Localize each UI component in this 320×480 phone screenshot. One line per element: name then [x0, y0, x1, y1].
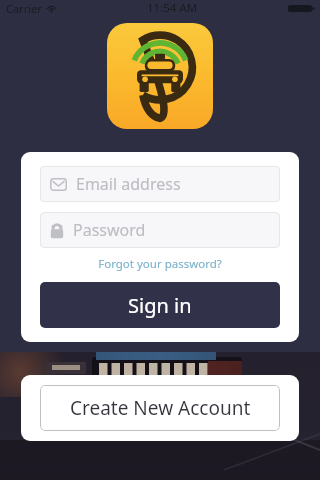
staticText: Carrier — [6, 1, 42, 16]
button[interactable]: Sign in — [40, 282, 280, 328]
staticText: 11:54 AM — [147, 0, 198, 16]
staticText: Create New Account — [70, 395, 251, 421]
staticText: Sign in — [128, 292, 192, 319]
button[interactable]: Email address — [40, 166, 280, 202]
staticText: Password — [73, 219, 146, 241]
staticText: Email address — [76, 173, 181, 195]
button[interactable]: Password — [40, 212, 280, 248]
staticText: Forgot your password? — [98, 256, 222, 272]
button[interactable]: Forgot your password? — [40, 256, 280, 272]
button[interactable]: Create New Account — [40, 385, 280, 431]
